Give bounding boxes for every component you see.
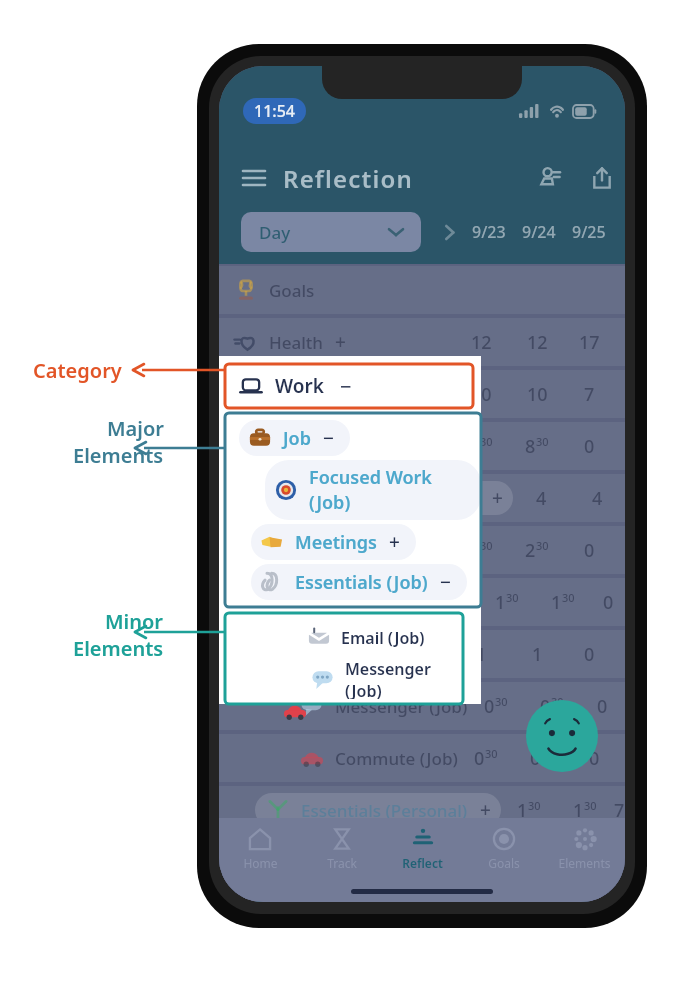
button[interactable]: Essentials (Job) xyxy=(219,578,625,626)
staticText: 0 xyxy=(603,590,614,615)
staticText: Elements xyxy=(73,635,164,662)
button[interactable]: Job xyxy=(239,420,350,456)
staticText: Meetings xyxy=(323,539,399,562)
button[interactable]: Mood xyxy=(526,700,598,772)
staticText: 12 xyxy=(527,330,548,355)
staticText: 8 xyxy=(469,434,480,459)
button[interactable]: Meetings xyxy=(251,524,416,560)
staticText: Track xyxy=(327,855,357,871)
staticText: 7 xyxy=(614,798,625,823)
staticText: Category xyxy=(33,357,122,384)
staticText: Work xyxy=(275,373,324,399)
staticText: 30 xyxy=(536,434,549,449)
staticText: 0 xyxy=(584,538,595,563)
staticText: 0 xyxy=(540,694,551,719)
staticText: 0 xyxy=(474,746,485,771)
button[interactable]: Commute (Job) xyxy=(219,734,625,782)
staticText: 9/23 xyxy=(472,221,506,243)
staticText: 12 xyxy=(471,330,492,355)
button[interactable]: Messenger (Job) xyxy=(311,658,463,699)
staticText: 2 xyxy=(469,538,480,563)
button[interactable]: Elements xyxy=(544,818,625,880)
staticText: − xyxy=(324,381,335,407)
staticText: 1 xyxy=(517,798,528,823)
button[interactable]: Search elements xyxy=(229,892,615,902)
staticText: Goals xyxy=(269,279,315,302)
staticText: − xyxy=(440,569,451,595)
staticText: 30 xyxy=(584,798,597,813)
staticText: 2 xyxy=(525,538,536,563)
button[interactable]: Email (Job) xyxy=(219,630,625,678)
staticText: Fun xyxy=(269,851,300,874)
button[interactable]: Email (Job) xyxy=(307,617,463,658)
button[interactable]: Focused Work (Job) xyxy=(219,474,625,522)
button[interactable]: Work xyxy=(219,370,625,418)
staticText: Job xyxy=(301,435,327,458)
button[interactable]: Health xyxy=(219,318,625,366)
staticText: Focused Work (Job) xyxy=(309,465,465,515)
staticText: Day xyxy=(259,221,291,244)
staticText: Essentials (Job) xyxy=(323,591,446,614)
staticText: + xyxy=(335,329,346,355)
staticText: Email (Job) xyxy=(335,643,422,666)
staticText: 0 xyxy=(484,694,495,719)
button[interactable]: Job xyxy=(219,422,625,470)
staticText: Email (Job) xyxy=(341,627,425,649)
staticText: 30 xyxy=(506,590,519,605)
staticText: 4 xyxy=(536,486,547,511)
button[interactable]: Messenger (Job) xyxy=(219,682,625,730)
staticText: Elements xyxy=(73,442,164,469)
staticText: 30 xyxy=(551,694,564,709)
staticText: Major xyxy=(107,415,164,442)
staticText: 0 xyxy=(597,694,608,719)
staticText: Reflect xyxy=(402,855,443,871)
staticText: Goals xyxy=(488,855,520,871)
staticText: Messenger (Job) xyxy=(335,695,468,718)
button[interactable]: Commute (Job) xyxy=(283,699,463,704)
staticText: 8 xyxy=(525,434,536,459)
staticText: 30 xyxy=(495,694,508,709)
button[interactable]: Day xyxy=(241,212,421,252)
button[interactable]: Meetings xyxy=(219,526,625,574)
button[interactable]: Next xyxy=(435,218,463,246)
staticText: 1 xyxy=(551,590,562,615)
staticText: − xyxy=(458,589,469,615)
button[interactable]: Goals xyxy=(219,266,625,314)
staticText: Job xyxy=(283,426,311,451)
staticText: 11:54 xyxy=(254,100,295,122)
staticText: 10 xyxy=(527,382,548,407)
button[interactable]: Share xyxy=(583,159,621,197)
button[interactable]: Track xyxy=(301,818,382,880)
staticText: Elements xyxy=(558,855,611,871)
staticText: + xyxy=(411,537,422,563)
button[interactable]: Essentials (Job) xyxy=(251,564,467,600)
staticText: 4 xyxy=(592,486,603,511)
staticText: Essentials (Job) xyxy=(295,570,428,595)
button[interactable]: Focused Work (Job) xyxy=(265,460,481,520)
staticText: 1 xyxy=(532,642,543,667)
button[interactable]: Work xyxy=(225,364,473,408)
staticText: 0 xyxy=(584,642,595,667)
button[interactable]: Fun xyxy=(219,838,625,886)
staticText: + xyxy=(492,485,503,511)
staticText: 0 xyxy=(584,850,595,875)
staticText: 30 xyxy=(485,746,498,761)
button[interactable]: Profile xyxy=(531,159,569,197)
staticText: Commute (Job) xyxy=(335,747,458,770)
button[interactable]: Goals xyxy=(463,818,544,880)
staticText: 17 xyxy=(579,330,600,355)
button[interactable]: Reflect xyxy=(382,818,463,880)
staticText: 30 xyxy=(480,538,493,553)
staticText: Search elements xyxy=(285,892,431,902)
button[interactable]: Menu xyxy=(237,161,271,195)
staticText: Minor xyxy=(105,608,164,635)
staticText: 7 xyxy=(584,382,595,407)
staticText: 30 xyxy=(480,434,493,449)
button[interactable]: Home xyxy=(219,818,301,880)
staticText: Focused Work (Job) xyxy=(323,487,480,510)
staticText: − xyxy=(340,373,352,400)
button[interactable]: Essentials (Personal) xyxy=(219,786,625,834)
staticText: 0 xyxy=(530,746,541,771)
